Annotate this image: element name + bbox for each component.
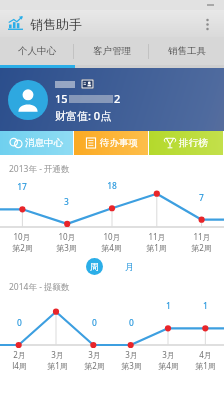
staticText: 第4周 <box>158 360 179 371</box>
button[interactable]: More options <box>197 14 217 34</box>
button[interactable]: 待办事项 <box>74 131 148 155</box>
staticText: 第3周 <box>121 360 142 371</box>
staticText: 3月 <box>125 349 138 360</box>
staticText: 0 <box>129 317 134 329</box>
staticText: 10月 <box>58 231 76 242</box>
button[interactable]: 周 <box>86 258 103 275</box>
staticText: 18 <box>107 180 117 192</box>
staticText: 3月 <box>51 349 64 360</box>
staticText: 0 <box>17 317 22 329</box>
staticText: 15 <box>55 91 68 106</box>
staticText: 2月 <box>13 349 26 360</box>
staticText: 第1周 <box>47 360 68 371</box>
staticText: 7 <box>199 192 204 204</box>
staticText: 第4周 <box>101 242 122 253</box>
staticText: 第3周 <box>56 242 77 253</box>
staticText: 10月 <box>103 231 121 242</box>
staticText: 2 <box>114 91 121 106</box>
staticText: 消息中心 <box>25 137 63 149</box>
staticText: 11月 <box>148 231 166 242</box>
button[interactable]: 个人中心 <box>0 37 74 65</box>
staticText: 第1周 <box>195 360 216 371</box>
staticText: 17 <box>17 181 27 193</box>
staticText: l4周 <box>12 360 27 371</box>
staticText: 1 <box>203 300 208 312</box>
staticText: 1 <box>166 300 171 312</box>
staticText: 11月 <box>193 231 211 242</box>
staticText: 月 <box>125 261 134 272</box>
staticText: 10月 <box>13 231 31 242</box>
staticText: 销售工具 <box>168 45 206 57</box>
staticText: 4月 <box>199 349 212 360</box>
staticText: 排行榜 <box>179 137 208 149</box>
staticText: 个人中心 <box>18 45 56 57</box>
staticText: 销售助手 <box>30 16 82 32</box>
staticText: 第2周 <box>191 242 212 253</box>
button[interactable]: Profile avatar <box>8 80 48 120</box>
staticText: 第2周 <box>12 242 33 253</box>
staticText: 2013年 - 开通数 <box>9 163 70 175</box>
staticText: 财富值: 0点 <box>55 108 112 123</box>
staticText: 3月 <box>88 349 101 360</box>
button[interactable]: 销售工具 <box>149 37 224 65</box>
staticText: 0 <box>92 317 97 329</box>
staticText: 第2周 <box>84 360 105 371</box>
staticText: 3 <box>64 196 69 208</box>
staticText: 周 <box>90 261 99 272</box>
button[interactable]: 客户管理 <box>74 37 149 65</box>
button[interactable]: 排行榜 <box>149 131 223 155</box>
button[interactable]: 月 <box>121 258 138 275</box>
staticText: 第1周 <box>146 242 167 253</box>
staticText: 3月 <box>162 349 175 360</box>
staticText: 待办事项 <box>100 137 138 149</box>
staticText: 2014年 - 提额数 <box>9 281 70 293</box>
staticText: 客户管理 <box>93 45 131 57</box>
button[interactable]: Business card <box>81 79 94 89</box>
button[interactable]: 消息中心 <box>0 131 73 155</box>
